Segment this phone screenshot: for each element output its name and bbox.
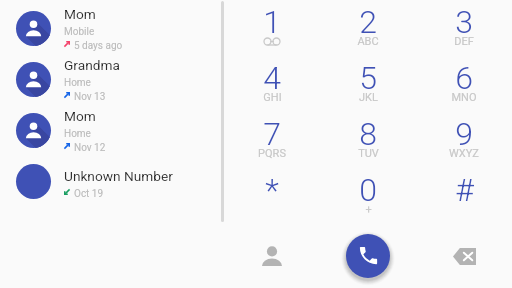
staticText: 5 days ago xyxy=(74,40,123,52)
staticText: # xyxy=(455,171,474,209)
staticText: Mom xyxy=(64,108,96,124)
staticText: 3 xyxy=(455,3,473,41)
button[interactable]: 2 xyxy=(320,0,416,56)
staticText: DEF xyxy=(454,35,474,48)
button[interactable]: 4 xyxy=(224,56,320,112)
staticText: * xyxy=(265,171,279,209)
staticText: 2 xyxy=(359,3,377,41)
staticText: ABC xyxy=(357,35,379,48)
staticText: Oct 19 xyxy=(74,188,104,200)
button[interactable]: Mom xyxy=(0,105,224,156)
button[interactable]: 7 xyxy=(224,112,320,168)
button[interactable]: # xyxy=(416,168,512,224)
staticText: 6 xyxy=(455,59,473,97)
staticText: Mom xyxy=(64,6,96,22)
staticText: Home xyxy=(64,128,91,140)
staticText: 5 xyxy=(359,59,377,97)
button[interactable]: Backspace xyxy=(416,224,512,288)
staticText: Nov 12 xyxy=(74,142,106,154)
staticText: JKL xyxy=(359,91,378,104)
staticText: 4 xyxy=(263,59,281,97)
button[interactable]: * xyxy=(224,168,320,224)
button[interactable]: 1 xyxy=(224,0,320,56)
staticText: 7 xyxy=(263,115,281,153)
button[interactable]: Unknown Number xyxy=(0,156,224,207)
button[interactable]: 8 xyxy=(320,112,416,168)
button[interactable]: 6 xyxy=(416,56,512,112)
staticText: Unknown Number xyxy=(64,168,173,184)
button[interactable]: Call xyxy=(346,234,390,278)
button[interactable]: Mom xyxy=(0,3,224,54)
staticText: Nov 13 xyxy=(74,91,106,103)
staticText: WXYZ xyxy=(449,147,479,160)
button[interactable]: 0 xyxy=(320,168,416,224)
button[interactable]: 5 xyxy=(320,56,416,112)
staticText: TUV xyxy=(358,147,379,160)
button[interactable]: 3 xyxy=(416,0,512,56)
button[interactable]: 9 xyxy=(416,112,512,168)
staticText: Home xyxy=(64,77,91,89)
staticText: GHI xyxy=(263,91,282,104)
button[interactable]: Grandma xyxy=(0,54,224,105)
staticText: + xyxy=(365,203,372,216)
staticText: 0 xyxy=(359,171,377,209)
button[interactable]: Contacts xyxy=(224,224,320,288)
staticText: 8 xyxy=(359,115,377,153)
staticText: 9 xyxy=(455,115,473,153)
staticText: Mobile xyxy=(64,26,95,38)
staticText: 1 xyxy=(263,3,281,41)
staticText: PQRS xyxy=(258,147,286,160)
staticText: MNO xyxy=(451,91,477,104)
staticText: Grandma xyxy=(64,57,120,73)
